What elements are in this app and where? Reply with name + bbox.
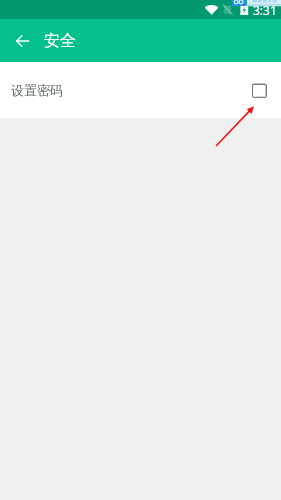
button[interactable]: 设置密码 — [0, 62, 281, 118]
button[interactable]: Set password — [252, 83, 267, 98]
staticText: 设置密码 — [11, 82, 63, 98]
staticText: 安全 — [44, 31, 76, 51]
staticText: 3:31 — [253, 2, 277, 18]
button[interactable]: Back — [0, 19, 44, 62]
